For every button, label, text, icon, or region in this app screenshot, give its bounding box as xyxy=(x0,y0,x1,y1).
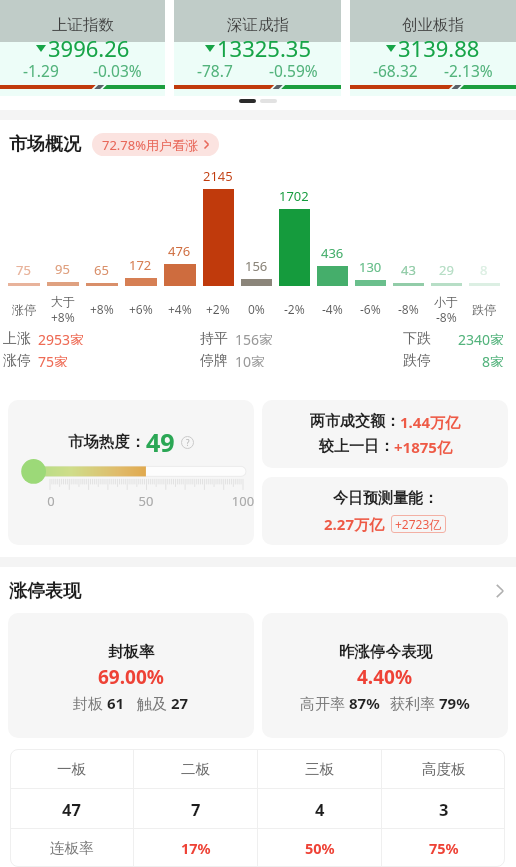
staticText: 13325.35 xyxy=(217,33,311,63)
staticText: 4 xyxy=(315,798,325,820)
staticText: 47 xyxy=(62,798,81,820)
button[interactable]: 一板 xyxy=(10,749,133,788)
staticText: 三板 xyxy=(305,760,334,778)
staticText: 436 xyxy=(321,244,344,262)
button[interactable]: 涨停表现 xyxy=(0,578,516,604)
staticText: 3996.26 xyxy=(48,33,130,63)
button[interactable]: 72.78%用户看涨 xyxy=(92,133,219,156)
staticText: 43 xyxy=(401,261,416,279)
staticText: +1875亿 xyxy=(394,437,452,457)
staticText: 3139.88 xyxy=(398,33,480,63)
staticText: 476 xyxy=(168,242,191,260)
button[interactable]: 高度板 xyxy=(382,749,505,788)
staticText: 停牌 xyxy=(200,352,228,367)
staticText: 持平 xyxy=(200,330,228,345)
staticText: +8% xyxy=(51,309,75,325)
staticText: 65 xyxy=(94,261,109,279)
staticText: 昨涨停今表现 xyxy=(339,642,432,662)
staticText: 大于 xyxy=(51,294,75,309)
staticText: -68.32 xyxy=(373,60,418,81)
staticText: -4% xyxy=(322,301,343,317)
staticText: 95 xyxy=(55,260,70,278)
staticText: -0.59% xyxy=(269,60,318,81)
staticText: 130 xyxy=(359,258,382,276)
staticText: -1.29 xyxy=(23,60,59,81)
staticText: 高度板 xyxy=(422,760,466,778)
staticText: 7 xyxy=(191,798,201,820)
button[interactable]: 市场热度： xyxy=(8,400,254,545)
staticText: 49 xyxy=(146,425,175,459)
staticText: 172 xyxy=(129,256,152,274)
button[interactable]: 上证指数 xyxy=(0,0,165,96)
staticText: 8家 xyxy=(482,352,505,367)
staticText: 二板 xyxy=(181,760,210,778)
staticText: -2% xyxy=(284,301,305,317)
staticText: 75家 xyxy=(38,352,69,367)
staticText: 69.00% xyxy=(98,664,164,690)
staticText: 100 xyxy=(223,492,254,510)
staticText: -2.13% xyxy=(444,60,493,81)
staticText: 上涨 xyxy=(3,330,31,345)
staticText: 封板率 xyxy=(108,642,155,662)
staticText: 跌停 xyxy=(403,352,431,367)
staticText: 2953家 xyxy=(38,330,85,345)
staticText: 10家 xyxy=(235,352,266,367)
staticText: 高开率 xyxy=(300,693,349,713)
staticText: 封板 xyxy=(73,693,107,713)
staticText: 2340家 xyxy=(458,330,505,345)
staticText: 市场概况 xyxy=(9,133,81,156)
staticText: 2145 xyxy=(203,167,233,185)
button[interactable]: 二板 xyxy=(134,749,257,788)
staticText: 50% xyxy=(305,838,335,858)
staticText: 较上一日： xyxy=(319,437,394,456)
staticText: -8% xyxy=(398,301,419,317)
staticText: 涨停 xyxy=(3,352,31,367)
staticText: 17% xyxy=(181,838,211,858)
staticText: +8% xyxy=(90,301,114,317)
staticText: -6% xyxy=(360,301,381,317)
staticText: +2% xyxy=(206,301,230,317)
staticText: 创业板指 xyxy=(402,15,464,35)
staticText: 1702 xyxy=(279,187,309,205)
button[interactable]: 两市成交额： xyxy=(262,400,508,468)
staticText: 小于 xyxy=(434,294,458,309)
staticText: 1.44万亿 xyxy=(400,412,460,432)
staticText: 3 xyxy=(439,798,449,820)
staticText: 跌停 xyxy=(472,302,496,317)
button[interactable]: 深证成指 xyxy=(174,0,341,96)
staticText: 下跌 xyxy=(403,330,431,345)
staticText: 79% xyxy=(439,693,470,713)
staticText: 今日预测量能： xyxy=(333,489,438,508)
staticText: 市场热度： xyxy=(68,432,146,452)
button[interactable]: 昨涨停今表现 xyxy=(262,613,508,738)
staticText: 2.27万亿 xyxy=(324,514,384,534)
staticText: 75 xyxy=(16,261,31,279)
staticText: 4.40% xyxy=(357,664,413,690)
staticText: 75% xyxy=(429,838,459,858)
staticText: +6% xyxy=(129,301,153,317)
staticText: 连板率 xyxy=(50,839,94,857)
staticText: 61 xyxy=(107,693,125,713)
staticText: 涨停表现 xyxy=(9,580,81,603)
staticText: 上证指数 xyxy=(52,15,114,35)
staticText: 获利率 xyxy=(390,693,439,713)
staticText: -0.03% xyxy=(93,60,142,81)
staticText: +2723亿 xyxy=(395,516,442,532)
staticText: 50 xyxy=(126,492,166,510)
staticText: 涨停 xyxy=(12,302,36,317)
staticText: 0% xyxy=(248,301,265,317)
other: 说明 xyxy=(181,436,194,449)
staticText: 87% xyxy=(349,693,380,713)
staticText: 深证成指 xyxy=(227,15,289,35)
button[interactable]: 今日预测量能： xyxy=(262,477,508,545)
staticText: 29 xyxy=(439,261,454,279)
staticText: 156家 xyxy=(235,330,274,345)
staticText: 0 xyxy=(31,492,71,510)
staticText: 72.78%用户看涨 xyxy=(102,136,199,154)
staticText: -78.7 xyxy=(197,60,233,81)
staticText: +4% xyxy=(168,301,192,317)
button[interactable]: 三板 xyxy=(258,749,381,788)
button[interactable]: 创业板指 xyxy=(350,0,516,96)
button[interactable]: 封板率 xyxy=(8,613,254,738)
staticText: 触及 xyxy=(137,693,171,713)
